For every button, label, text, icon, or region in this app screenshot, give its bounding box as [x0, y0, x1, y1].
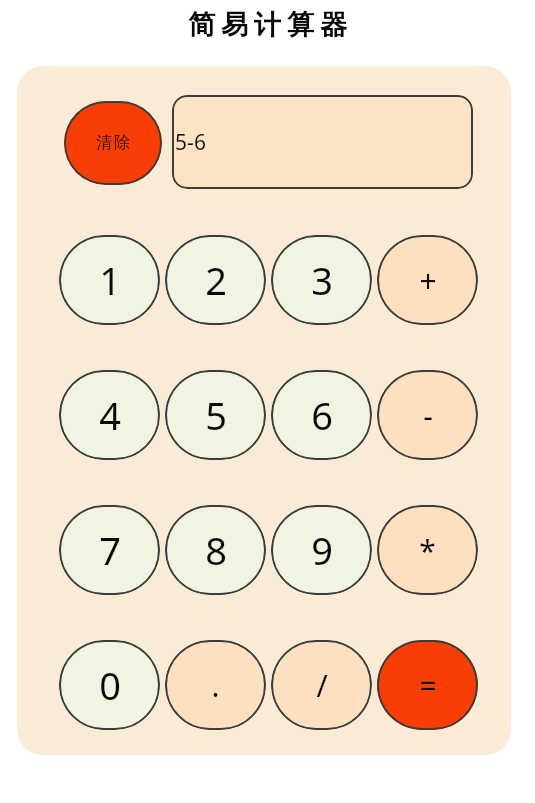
staticText: = — [419, 665, 437, 706]
button[interactable]: - — [377, 370, 478, 460]
button[interactable]: = — [377, 640, 478, 730]
button[interactable]: 7 — [59, 505, 160, 595]
staticText: - — [423, 395, 433, 436]
button[interactable]: Display — [172, 95, 473, 189]
staticText: 3 — [311, 254, 333, 306]
button[interactable]: 6 — [271, 370, 372, 460]
staticText: 4 — [99, 389, 121, 441]
button[interactable]: 2 — [165, 235, 266, 325]
button[interactable]: 3 — [271, 235, 372, 325]
button[interactable]: 1 — [59, 235, 160, 325]
button[interactable]: 8 — [165, 505, 266, 595]
staticText: / — [316, 665, 328, 706]
button[interactable]: / — [271, 640, 372, 730]
staticText: 8 — [205, 524, 227, 576]
staticText: 简易计算器 — [185, 8, 350, 42]
button[interactable]: 清除 — [64, 101, 162, 185]
button[interactable]: * — [377, 505, 478, 595]
staticText: 清除 — [95, 133, 131, 153]
staticText: 5 — [205, 389, 227, 441]
staticText: 9 — [311, 524, 333, 576]
staticText: + — [419, 260, 437, 301]
button[interactable]: 0 — [59, 640, 160, 730]
staticText: . — [211, 665, 220, 706]
staticText: 5-6 — [175, 128, 206, 157]
button[interactable]: + — [377, 235, 478, 325]
button[interactable]: . — [165, 640, 266, 730]
staticText: 0 — [99, 659, 121, 711]
button[interactable]: 5 — [165, 370, 266, 460]
staticText: 1 — [99, 254, 121, 306]
button[interactable]: 9 — [271, 505, 372, 595]
staticText: 2 — [205, 254, 227, 306]
button[interactable]: 4 — [59, 370, 160, 460]
staticText: 6 — [311, 389, 333, 441]
staticText: * — [419, 530, 436, 571]
staticText: 7 — [99, 524, 121, 576]
